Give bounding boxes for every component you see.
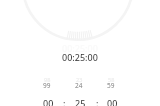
staticText: 58 (108, 76, 115, 83)
staticText: 00:25:00 (62, 51, 98, 63)
button[interactable]: 24 (63, 81, 95, 90)
staticText: 00 (107, 97, 118, 106)
button[interactable]: 58 (95, 76, 127, 83)
staticText: 98 (44, 76, 51, 83)
button[interactable]: 00 (32, 97, 64, 106)
staticText: : (96, 97, 99, 106)
staticText: 99 (43, 81, 51, 90)
staticText: 59 (107, 81, 115, 90)
button[interactable]: 59 (95, 81, 127, 90)
staticText: 23 (76, 76, 83, 83)
button[interactable]: 99 (31, 81, 63, 90)
button[interactable]: 23 (63, 76, 95, 83)
staticText: : (63, 97, 66, 106)
button[interactable]: 98 (31, 76, 63, 83)
staticText: 24 (75, 81, 83, 90)
staticText: 25 (75, 97, 86, 106)
button[interactable]: 00 (96, 97, 128, 106)
button[interactable]: 25 (64, 97, 96, 106)
staticText: 00 (43, 97, 54, 106)
button[interactable]: 00:25:00 (62, 51, 98, 63)
